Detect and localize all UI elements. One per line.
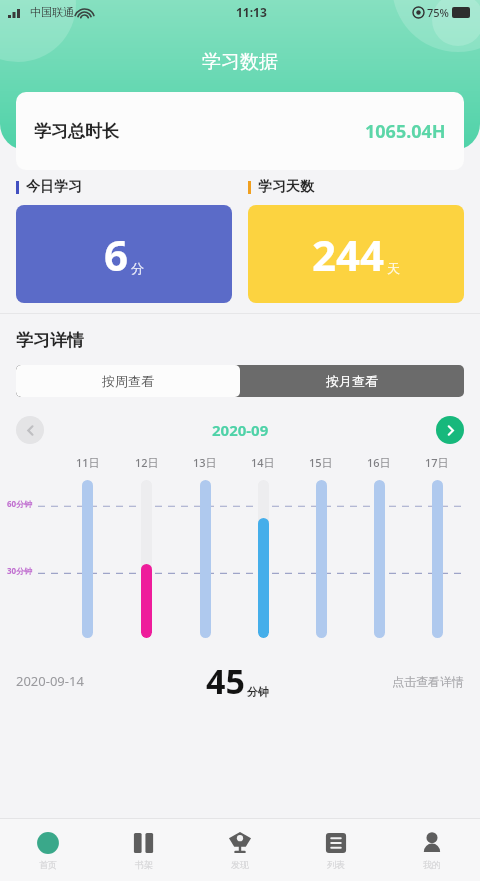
staticText: 60分钟 <box>7 498 33 509</box>
button[interactable] <box>141 480 152 638</box>
staticText: 11日 <box>76 455 100 470</box>
staticText: 学习天数 <box>258 178 314 196</box>
button[interactable] <box>432 480 443 638</box>
staticText: 发现 <box>231 859 249 870</box>
staticText: 我的 <box>423 859 441 870</box>
staticText: 12日 <box>135 455 159 470</box>
staticText: 列表 <box>327 859 345 870</box>
staticText: 点击查看详情 <box>392 674 464 689</box>
button[interactable] <box>200 480 211 638</box>
button[interactable]: 发现 <box>192 819 288 881</box>
staticText: 书架 <box>135 859 153 870</box>
button[interactable]: Previous month <box>16 416 44 444</box>
staticText: 13日 <box>193 455 217 470</box>
staticText: 分钟 <box>247 685 269 699</box>
staticText: 按月查看 <box>326 373 378 389</box>
staticText: 15日 <box>309 455 333 470</box>
button[interactable]: 点击查看详情 <box>392 674 464 689</box>
button[interactable]: 6 <box>16 205 232 303</box>
staticText: 学习详情 <box>16 330 84 351</box>
staticText: 11:13 <box>236 4 267 20</box>
staticText: 天 <box>387 260 400 276</box>
staticText: 首页 <box>39 859 57 870</box>
staticText: 学习总时长 <box>34 121 119 142</box>
staticText: 244 <box>312 226 385 283</box>
button[interactable]: 244 <box>248 205 464 303</box>
staticText: 16日 <box>367 455 391 470</box>
button[interactable]: 列表 <box>288 819 384 881</box>
staticText: 学习数据 <box>202 50 278 74</box>
staticText: 中国联通 <box>30 5 74 19</box>
button[interactable] <box>258 480 269 638</box>
button[interactable] <box>82 480 93 638</box>
button[interactable] <box>374 480 385 638</box>
button[interactable]: Next month <box>436 416 464 444</box>
button[interactable]: 学习总时长 <box>16 92 464 170</box>
staticText: 14日 <box>251 455 275 470</box>
staticText: 2020-09 <box>212 420 269 440</box>
button[interactable]: 按周查看 <box>16 365 240 397</box>
staticText: 30分钟 <box>7 565 33 576</box>
staticText: 6 <box>104 226 129 283</box>
staticText: 1065.04H <box>365 119 446 144</box>
button[interactable]: 我的 <box>384 819 480 881</box>
staticText: 今日学习 <box>26 178 82 196</box>
button[interactable]: 按月查看 <box>240 365 464 397</box>
staticText: 75% <box>427 5 449 20</box>
staticText: 按周查看 <box>102 373 154 389</box>
button[interactable] <box>316 480 327 638</box>
staticText: 分 <box>131 260 144 276</box>
staticText: 17日 <box>425 455 449 470</box>
staticText: 2020-09-14 <box>16 672 84 690</box>
staticText: 45 <box>206 658 245 704</box>
button[interactable]: 书架 <box>96 819 192 881</box>
button[interactable]: 首页 <box>0 819 96 881</box>
